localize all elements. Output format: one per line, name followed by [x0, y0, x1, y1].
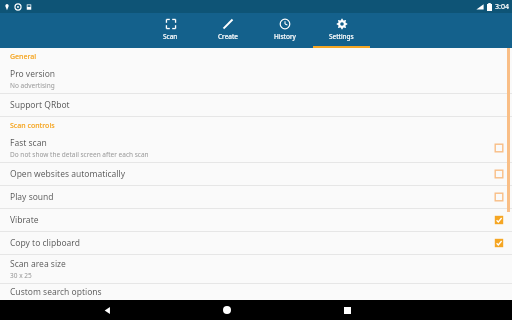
staticText: Vibrate: [10, 214, 39, 226]
button[interactable]: Disabled: [494, 143, 504, 153]
staticText: Settings: [329, 32, 354, 41]
button[interactable]: Support QRbot: [0, 94, 512, 116]
button[interactable]: Scan area size: [0, 255, 512, 283]
staticText: Support QRbot: [10, 99, 70, 111]
staticText: Do not show the detail screen after each…: [10, 150, 149, 159]
button[interactable]: Back: [95, 300, 119, 320]
staticText: 30 x 25: [10, 271, 32, 280]
staticText: Play sound: [10, 191, 54, 203]
button[interactable]: Fast scan: [0, 134, 512, 162]
staticText: 3:04: [495, 2, 509, 12]
button[interactable]: Custom search options: [0, 284, 512, 300]
button[interactable]: Recent apps: [335, 300, 359, 320]
staticText: General: [10, 52, 37, 62]
staticText: Custom search options: [10, 286, 102, 298]
staticText: Open websites automatically: [10, 168, 126, 180]
staticText: Scan area size: [10, 258, 66, 270]
button[interactable]: Disabled: [494, 192, 504, 202]
button[interactable]: Enabled: [494, 238, 504, 248]
button[interactable]: Open websites automatically: [0, 163, 512, 185]
button[interactable]: Settings: [313, 13, 370, 48]
button[interactable]: Pro version: [0, 65, 512, 93]
staticText: Fast scan: [10, 137, 47, 149]
staticText: History: [274, 32, 296, 41]
staticText: Scan: [163, 32, 178, 41]
staticText: Scan controls: [10, 121, 55, 131]
button[interactable]: Vibrate: [0, 209, 512, 231]
button[interactable]: Scan: [142, 13, 199, 48]
staticText: Create: [218, 32, 238, 41]
button[interactable]: Home: [215, 300, 239, 320]
button[interactable]: Play sound: [0, 186, 512, 208]
staticText: No advertising: [10, 81, 55, 90]
staticText: Copy to clipboard: [10, 237, 80, 249]
button[interactable]: Copy to clipboard: [0, 232, 512, 254]
button[interactable]: Enabled: [494, 215, 504, 225]
staticText: Pro version: [10, 68, 56, 80]
button[interactable]: History: [256, 13, 313, 48]
button[interactable]: Disabled: [494, 169, 504, 179]
button[interactable]: Create: [199, 13, 256, 48]
